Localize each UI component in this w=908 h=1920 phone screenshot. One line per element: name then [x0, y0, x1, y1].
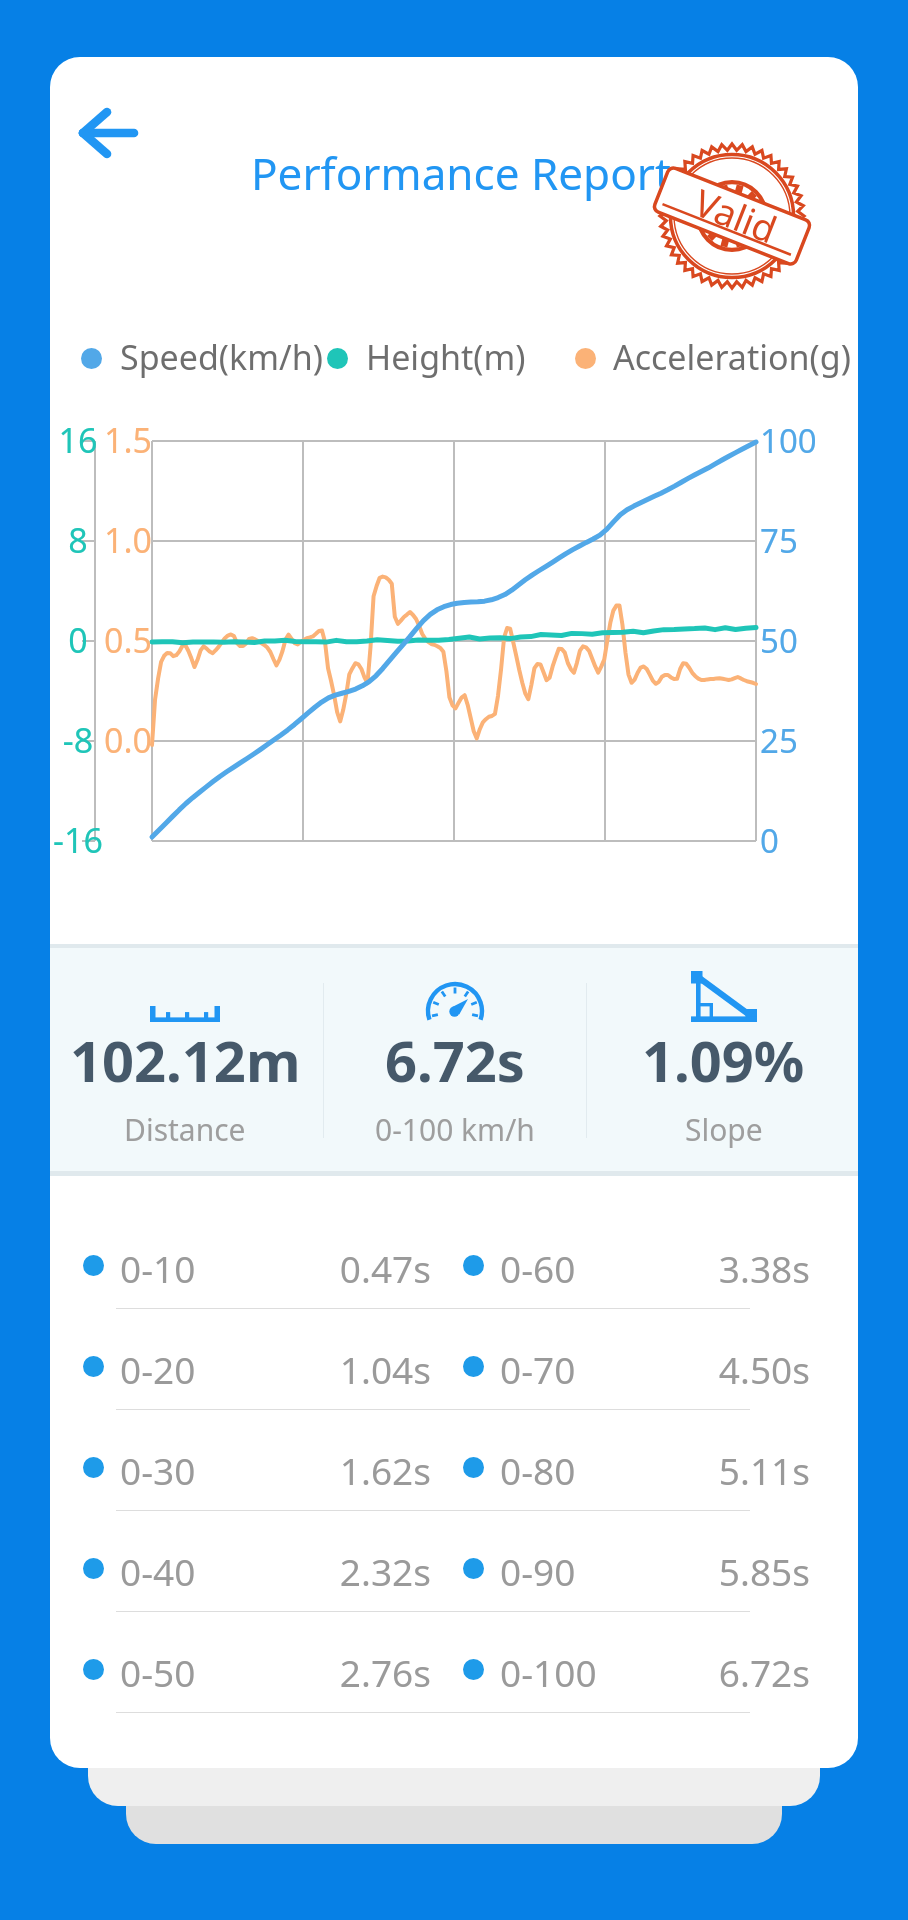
staticText: 1.09% [642, 1022, 805, 1098]
staticText: 16 [50, 417, 106, 463]
staticText: 5.11s [463, 1445, 810, 1495]
button[interactable]: 6.72s [320, 948, 589, 1171]
staticText: 1.62s [83, 1445, 431, 1495]
staticText: 0-50 [120, 1647, 196, 1697]
staticText: 2.76s [83, 1647, 431, 1697]
staticText: 4.50s [463, 1344, 810, 1394]
staticText: 6.72s [385, 1022, 525, 1098]
staticText: 6.72s [463, 1647, 810, 1697]
staticText: 0-20 [120, 1344, 196, 1394]
staticText: 0.47s [83, 1243, 431, 1293]
staticText: 100 [760, 418, 850, 463]
button[interactable]: 0-40 [83, 1524, 431, 1612]
staticText: 102.12m [70, 1022, 301, 1098]
staticText: -8 [50, 717, 106, 763]
staticText: 5.85s [463, 1546, 810, 1596]
staticText: 8 [50, 517, 106, 563]
staticText: 0-70 [500, 1344, 576, 1394]
button[interactable]: Back [56, 93, 160, 173]
staticText: 0 [50, 617, 106, 663]
staticText: Valid [688, 176, 785, 254]
button[interactable]: 0-70 [463, 1322, 810, 1410]
staticText: 50 [760, 618, 850, 663]
staticText: 0-100 km/h [375, 1109, 535, 1150]
staticText: 75 [760, 518, 850, 563]
staticText: 3.38s [463, 1243, 810, 1293]
staticText: 0-100 [500, 1647, 597, 1697]
staticText: 1.0 [72, 517, 152, 563]
staticText: 0 [760, 818, 850, 863]
button[interactable]: 0-50 [83, 1625, 431, 1713]
button[interactable]: 1.09% [589, 948, 858, 1171]
staticText: Acceleration(g) [613, 334, 851, 380]
button[interactable]: 0-30 [83, 1423, 431, 1511]
staticText: 0-90 [500, 1546, 576, 1596]
staticText: Performance Report [251, 143, 671, 203]
staticText: Height(m) [366, 334, 526, 380]
button[interactable]: 102.12m [50, 948, 320, 1171]
staticText: Slope [685, 1109, 763, 1150]
staticText: Distance [124, 1109, 246, 1150]
staticText: Speed(km/h) [120, 334, 323, 380]
staticText: 0-40 [120, 1546, 196, 1596]
staticText: 0.5 [72, 617, 152, 663]
staticText: 0.0 [72, 717, 152, 763]
button[interactable]: 0-100 [463, 1625, 810, 1713]
staticText: 0-30 [120, 1445, 196, 1495]
staticText: 0-10 [120, 1243, 196, 1293]
button[interactable]: 0-20 [83, 1322, 431, 1410]
button[interactable]: 0-80 [463, 1423, 810, 1511]
button[interactable]: 0-10 [83, 1221, 431, 1309]
staticText: 2.32s [83, 1546, 431, 1596]
staticText: 1.04s [83, 1344, 431, 1394]
button[interactable]: 0-60 [463, 1221, 810, 1309]
staticText: 25 [760, 718, 850, 763]
staticText: 0-60 [500, 1243, 576, 1293]
button[interactable]: 0-90 [463, 1524, 810, 1612]
staticText: 0-80 [500, 1445, 576, 1495]
staticText: 1.5 [72, 417, 152, 463]
staticText: -16 [50, 817, 106, 863]
